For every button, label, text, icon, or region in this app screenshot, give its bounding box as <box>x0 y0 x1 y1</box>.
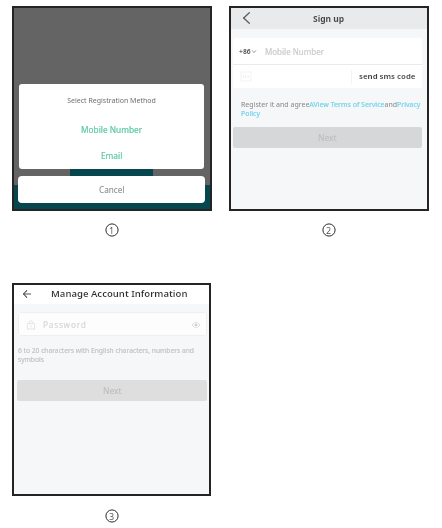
staticText: +86 <box>239 47 251 56</box>
staticText: Sign up <box>313 13 345 25</box>
staticText: Mobile Number <box>81 124 143 135</box>
staticText: 6 to 20 characters with English characte… <box>18 346 202 364</box>
staticText: Select Registration Method <box>19 96 204 106</box>
button[interactable]: Cancel <box>18 176 205 203</box>
staticText: Manage Account Information <box>51 287 188 300</box>
button[interactable]: Mobile Number <box>19 120 204 138</box>
button[interactable]: Back <box>238 10 254 26</box>
button[interactable]: Email <box>19 146 204 164</box>
staticText: Password <box>43 319 87 330</box>
button[interactable]: +86 <box>233 38 422 64</box>
staticText: Email <box>101 150 123 161</box>
staticText: Register it and agreeAView Terms of Serv… <box>241 100 424 118</box>
button[interactable]: Show password <box>190 319 201 330</box>
staticText: 2 <box>326 224 332 236</box>
staticText: Next <box>318 132 337 144</box>
staticText: Mobile Number <box>265 46 324 57</box>
button[interactable]: Password <box>18 312 207 336</box>
staticText: Cancel <box>99 184 125 195</box>
staticText: send sms code <box>359 71 416 82</box>
staticText: 1 <box>109 224 115 236</box>
staticText: 3 <box>109 510 115 522</box>
button[interactable]: send sms code <box>352 71 422 82</box>
button[interactable]: Back <box>20 287 34 301</box>
staticText: Next <box>103 385 122 397</box>
